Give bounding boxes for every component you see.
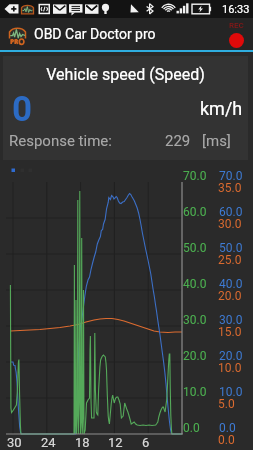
staticText: 0.0 (183, 421, 200, 435)
staticText: 20.0 (218, 289, 242, 303)
staticText: 10.0 (219, 385, 243, 399)
staticText: 60.0 (219, 205, 243, 219)
staticText: 50.0 (219, 241, 243, 255)
staticText: 229 (165, 132, 191, 150)
staticText: km/h (200, 98, 243, 119)
staticText: 70.0 (219, 169, 243, 183)
staticText: 70.0 (183, 169, 207, 183)
staticText: 30 (7, 435, 22, 450)
staticText: 12 (108, 435, 123, 450)
staticText: 40.0 (183, 277, 207, 291)
staticText: 30.0 (183, 313, 207, 327)
staticText: 18 (75, 435, 90, 450)
staticText: 5.0 (218, 397, 235, 411)
staticText: 20.0 (219, 349, 243, 363)
staticText: 6 (142, 435, 150, 450)
button[interactable]: Vehicle speed (Speed) (3, 56, 248, 160)
staticText: 30.0 (219, 313, 243, 327)
staticText: 30.0 (218, 217, 242, 231)
staticText: 15.0 (218, 325, 242, 339)
staticText: 50.0 (183, 241, 207, 255)
staticText: 35.0 (218, 181, 242, 195)
staticText: 20.0 (183, 349, 207, 363)
staticText: OBD Car Doctor pro (34, 26, 156, 42)
staticText: 0.0 (219, 421, 236, 435)
staticText: 60.0 (183, 205, 207, 219)
staticText: REC (229, 21, 244, 30)
staticText: 24 (41, 435, 56, 450)
staticText: 16:33 (222, 3, 250, 16)
staticText: 0 (12, 89, 33, 130)
staticText: 40.0 (219, 277, 243, 291)
staticText: Response time: (9, 132, 112, 150)
staticText: 10.0 (183, 385, 207, 399)
staticText: Vehicle speed (Speed) (3, 65, 248, 84)
button[interactable]: Record (219, 18, 253, 50)
staticText: [ms] (202, 132, 231, 150)
staticText: 10.0 (218, 361, 242, 375)
staticText: 0.0 (218, 433, 235, 447)
staticText: 25.0 (218, 253, 242, 267)
